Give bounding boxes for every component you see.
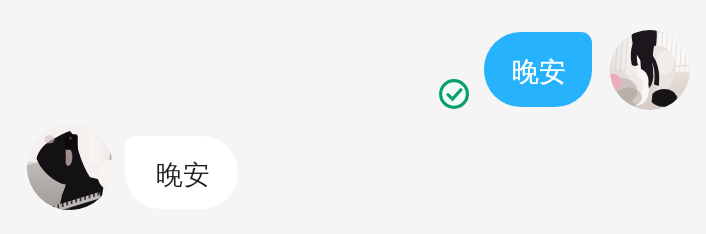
button[interactable]: My avatar	[27, 124, 113, 210]
button[interactable]: 晚安	[125, 136, 238, 209]
button[interactable]: 晚安	[484, 32, 592, 107]
staticText: 晚安	[512, 55, 566, 89]
button[interactable]: Contact avatar	[610, 30, 690, 110]
staticText: 晚安	[156, 158, 210, 192]
button[interactable]: Message sent	[439, 79, 469, 109]
